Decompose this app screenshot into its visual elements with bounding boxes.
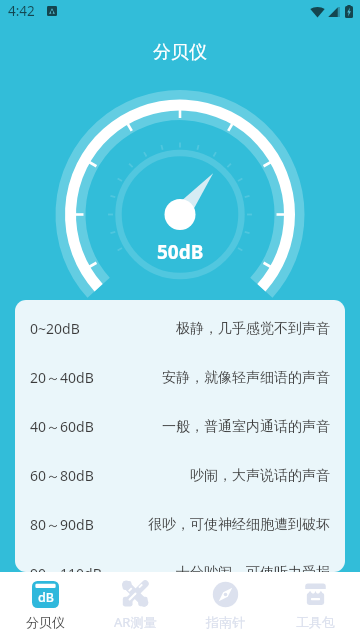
staticText: 50dB xyxy=(157,239,204,265)
staticText: 分贝仪 xyxy=(26,614,65,630)
button[interactable]: 90～110dB xyxy=(15,564,345,572)
staticText: 极静，几乎感觉不到声音 xyxy=(88,320,330,338)
staticText: 0~20dB xyxy=(30,319,80,338)
staticText: 安静，就像轻声细语的声音 xyxy=(102,369,330,387)
staticText: 一般，普通室内通话的声音 xyxy=(102,418,330,436)
staticText: 分贝仪 xyxy=(153,41,207,64)
button[interactable]: 60～80dB xyxy=(15,466,345,515)
staticText: 60～80dB xyxy=(30,466,94,485)
staticText: dB xyxy=(38,589,54,606)
button[interactable]: 工具包 xyxy=(270,572,360,639)
staticText: 工具包 xyxy=(296,614,335,630)
button[interactable]: 0~20dB xyxy=(15,319,345,368)
staticText: AR测量 xyxy=(114,613,157,631)
staticText: 4:42 xyxy=(8,2,35,20)
staticText: 吵闹，大声说话的声音 xyxy=(102,467,330,485)
button[interactable]: 20～40dB xyxy=(15,368,345,417)
staticText: 指南针 xyxy=(206,614,245,630)
button[interactable]: dB xyxy=(0,572,90,639)
button[interactable]: AR测量 xyxy=(90,572,180,639)
button[interactable]: 指南针 xyxy=(180,572,270,639)
staticText: 十分吵闹，可使听力受损 xyxy=(110,564,330,572)
staticText: 80～90dB xyxy=(30,515,94,534)
button[interactable]: 80～90dB xyxy=(15,515,345,564)
staticText: 很吵，可使神经细胞遭到破坏 xyxy=(102,516,330,534)
staticText: 20～40dB xyxy=(30,368,94,387)
staticText: 40～60dB xyxy=(30,417,94,436)
button[interactable]: 40～60dB xyxy=(15,417,345,466)
staticText: 90～110dB xyxy=(30,564,102,572)
